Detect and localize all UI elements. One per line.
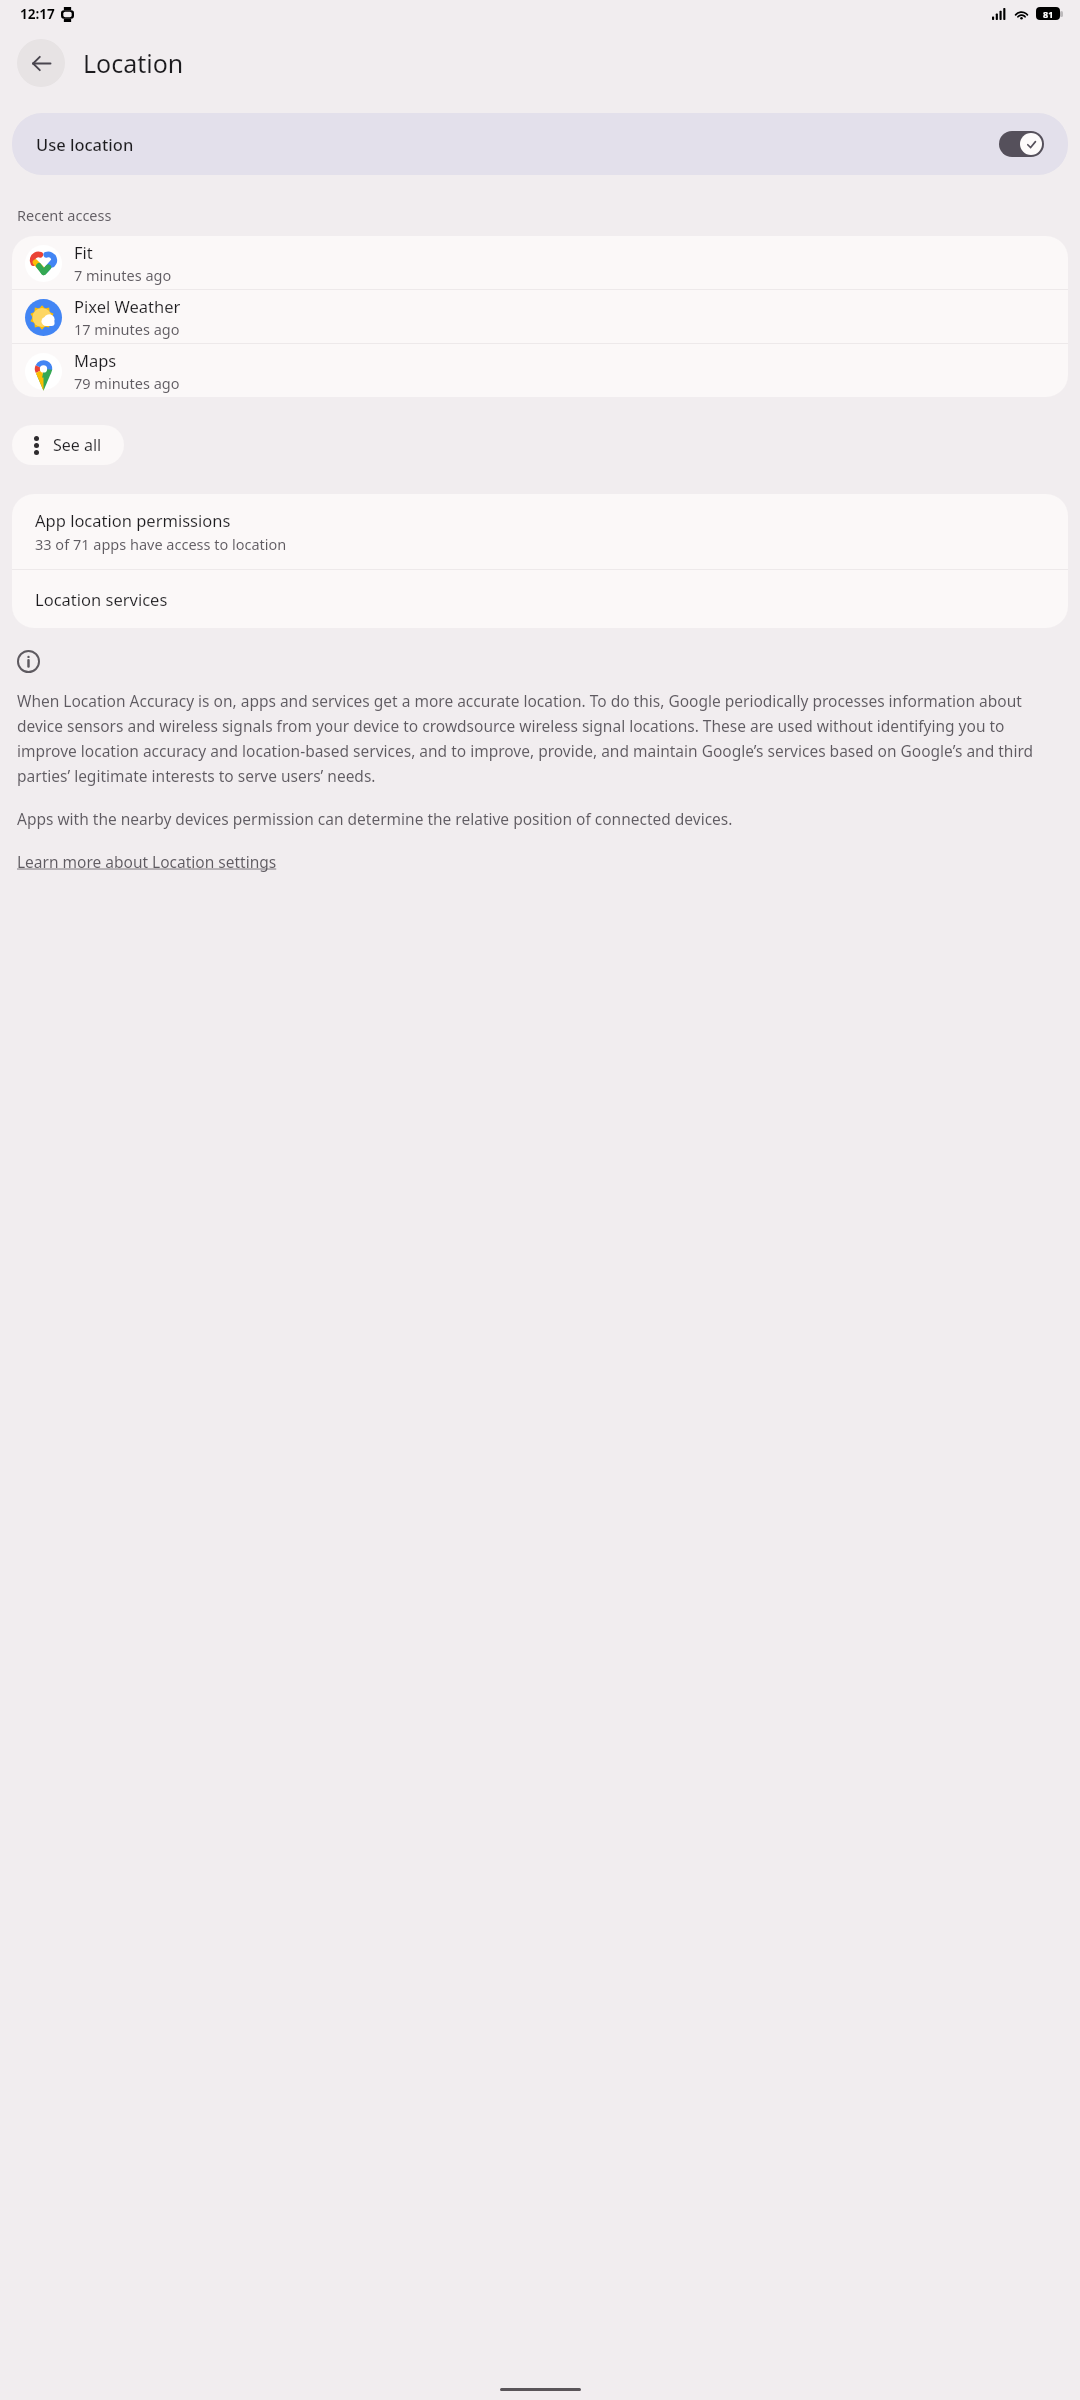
staticText: 79 minutes ago <box>74 373 180 393</box>
staticText: 12:17 <box>20 5 55 23</box>
staticText: 17 minutes ago <box>74 319 180 339</box>
staticText: Pixel Weather <box>74 295 181 317</box>
staticText: 81 <box>1043 8 1054 20</box>
button[interactable]: Learn more about Location settings <box>17 851 277 872</box>
button[interactable]: App location permissions <box>12 494 1068 569</box>
staticText: Fit <box>74 241 93 263</box>
staticText: 7 minutes ago <box>74 265 172 285</box>
staticText: When Location Accuracy is on, apps and s… <box>17 690 1063 786</box>
button[interactable]: Fit <box>12 236 1068 289</box>
button[interactable]: Pixel Weather <box>12 290 1068 343</box>
button[interactable]: Back <box>17 39 65 87</box>
staticText: Apps with the nearby devices permission … <box>17 808 733 829</box>
button[interactable]: See all <box>12 425 124 465</box>
staticText: Location services <box>35 588 168 610</box>
staticText: Maps <box>74 349 117 371</box>
button[interactable]: Location services <box>12 570 1068 628</box>
staticText: Recent access <box>17 205 112 225</box>
staticText: Use location <box>36 133 134 155</box>
staticText: 33 of 71 apps have access to location <box>35 534 287 554</box>
button[interactable]: Maps <box>12 344 1068 397</box>
button[interactable]: Use location <box>12 113 1068 175</box>
staticText: See all <box>53 434 102 456</box>
staticText: Location <box>83 46 184 80</box>
staticText: App location permissions <box>35 509 231 531</box>
